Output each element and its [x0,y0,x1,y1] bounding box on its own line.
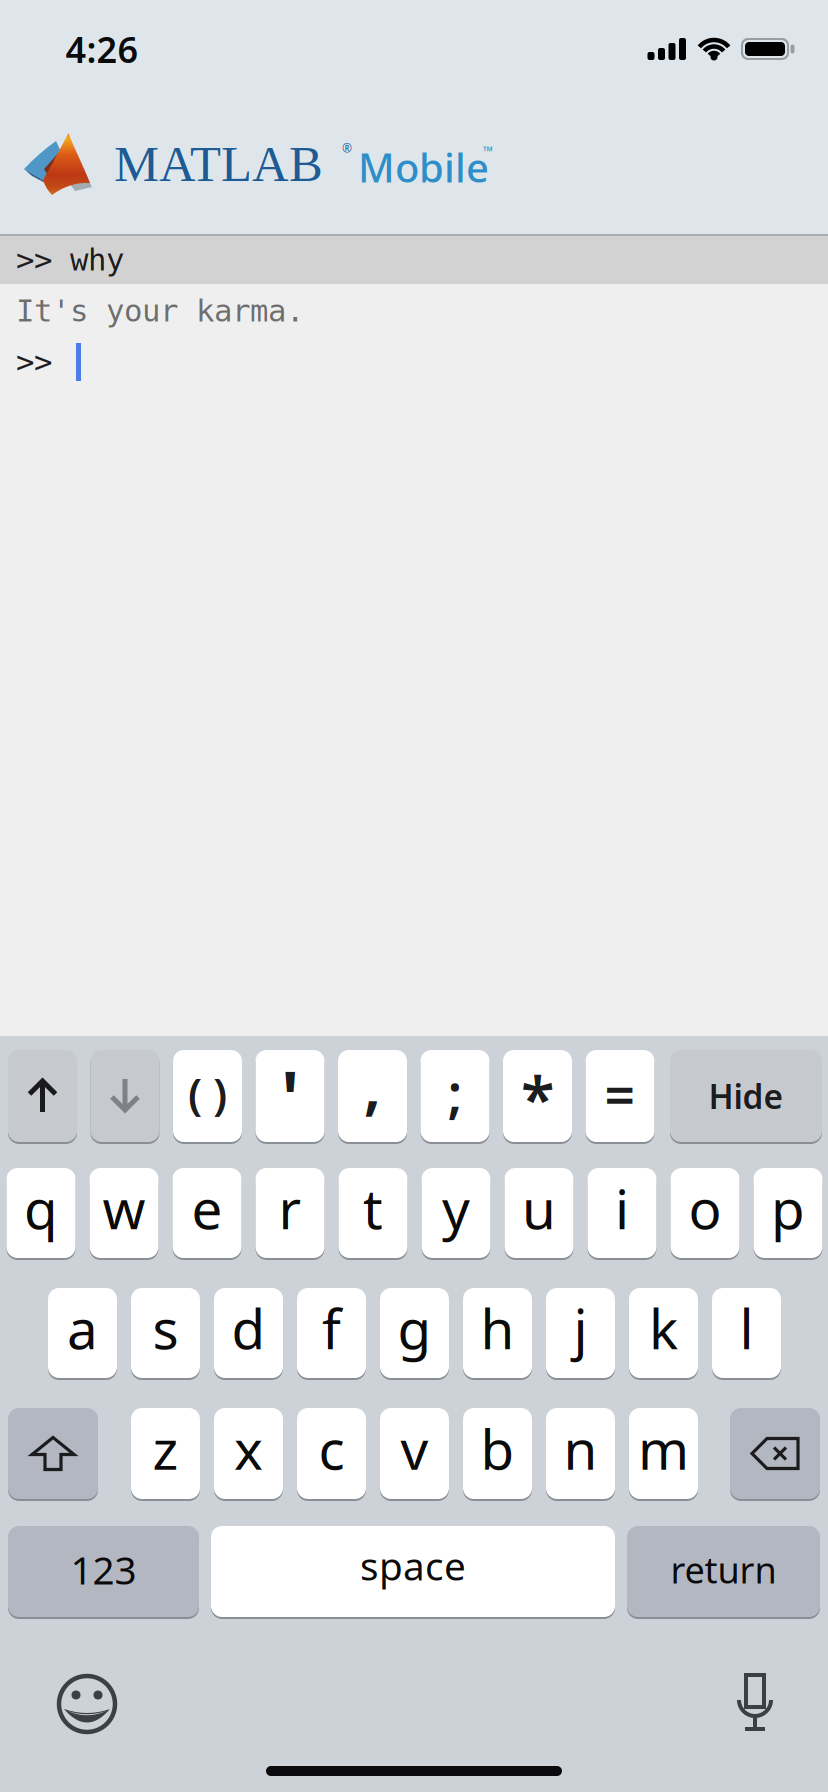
button[interactable]: , [338,1049,407,1143]
button[interactable]: g [380,1287,449,1379]
staticText: space [360,1540,466,1591]
button[interactable]: v [380,1407,449,1500]
staticText: ™ [483,142,493,160]
staticText: 123 [70,1544,136,1595]
button[interactable]: x [214,1407,283,1500]
staticText: r [278,1172,301,1244]
staticText: z [152,1412,178,1485]
button[interactable]: return [627,1525,820,1618]
staticText: e [191,1172,222,1244]
button[interactable]: w [89,1167,158,1259]
button[interactable]: c [297,1407,366,1500]
staticText: s [152,1292,178,1364]
staticText: return [670,1546,776,1593]
staticText: h [480,1292,514,1364]
staticText: x [234,1412,263,1485]
button[interactable] [47,1664,127,1744]
button[interactable]: i [587,1167,656,1259]
button[interactable]: o [670,1167,739,1259]
button[interactable]: * [503,1049,572,1143]
button[interactable] [90,1049,159,1143]
staticText: m [638,1412,689,1485]
button[interactable]: ' [255,1049,324,1143]
button[interactable]: space [211,1525,615,1618]
button[interactable]: s [131,1287,200,1379]
staticText: v [400,1412,428,1485]
staticText: t [363,1172,383,1244]
button[interactable] [8,1407,98,1500]
button[interactable]: r [255,1167,324,1259]
staticText: * [521,1057,554,1139]
staticText: ' [280,1047,299,1149]
staticText: >> [16,345,52,379]
button[interactable]: d [214,1287,283,1379]
button[interactable]: p [753,1167,822,1259]
staticText: Hide [708,1074,783,1118]
button[interactable]: = [585,1049,654,1143]
button[interactable]: n [546,1407,615,1500]
staticText: i [615,1172,629,1244]
button[interactable]: 123 [8,1525,199,1618]
staticText: y [442,1172,470,1244]
staticText: w [102,1172,145,1244]
staticText: k [649,1292,678,1364]
staticText: n [563,1412,597,1485]
button[interactable]: ( ) [173,1049,242,1143]
button[interactable]: ; [420,1049,489,1143]
staticText: = [604,1059,635,1129]
staticText: d [231,1292,265,1364]
staticText: ; [447,1057,462,1127]
button[interactable] [730,1407,820,1500]
button[interactable]: b [463,1407,532,1500]
staticText: u [522,1172,556,1244]
button[interactable]: j [546,1287,615,1379]
button[interactable]: k [629,1287,698,1379]
staticText: 4:26 [65,25,138,73]
button[interactable]: t [338,1167,407,1259]
staticText: ® [342,140,352,156]
staticText: It's your karma. [16,294,304,328]
button[interactable]: h [463,1287,532,1379]
button[interactable]: y [421,1167,490,1259]
staticText: j [573,1292,587,1364]
staticText: q [24,1172,58,1244]
staticText: MATLAB [114,136,323,192]
button[interactable]: m [629,1407,698,1500]
staticText: , [363,1041,381,1126]
staticText: p [771,1172,805,1244]
staticText: ( ) [188,1064,227,1122]
button[interactable] [725,1664,785,1744]
staticText: l [739,1292,753,1364]
staticText: f [322,1292,341,1364]
staticText: Mobile [358,140,489,193]
staticText: c [318,1412,344,1485]
button[interactable]: >> why [0,236,828,284]
button[interactable]: z [131,1407,200,1500]
staticText: a [67,1292,98,1364]
button[interactable]: a [48,1287,117,1379]
button[interactable]: e [172,1167,241,1259]
button[interactable]: q [6,1167,75,1259]
staticText: >> why [16,243,124,277]
button[interactable]: Hide [670,1049,822,1143]
staticText: g [397,1292,431,1364]
staticText: o [688,1172,721,1244]
button[interactable]: f [297,1287,366,1379]
staticText: b [480,1412,514,1485]
button[interactable]: u [504,1167,573,1259]
button[interactable]: l [712,1287,781,1379]
button[interactable] [8,1049,77,1143]
